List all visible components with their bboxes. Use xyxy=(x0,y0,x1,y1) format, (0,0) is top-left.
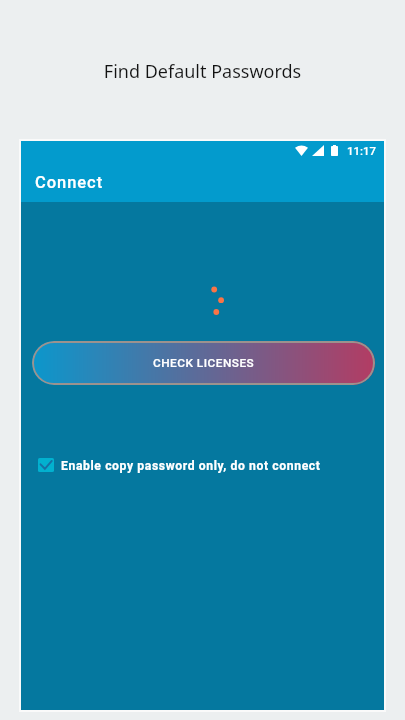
staticText: Find Default Passwords xyxy=(0,59,405,84)
button[interactable]: CHECK LICENSES xyxy=(32,341,375,385)
button[interactable]: Enable copy password only, do not connec… xyxy=(38,451,321,481)
staticText: Enable copy password only, do not connec… xyxy=(61,459,321,473)
staticText: 11:17 xyxy=(347,144,376,157)
staticText: Connect xyxy=(35,173,104,192)
staticText: CHECK LICENSES xyxy=(153,356,255,370)
